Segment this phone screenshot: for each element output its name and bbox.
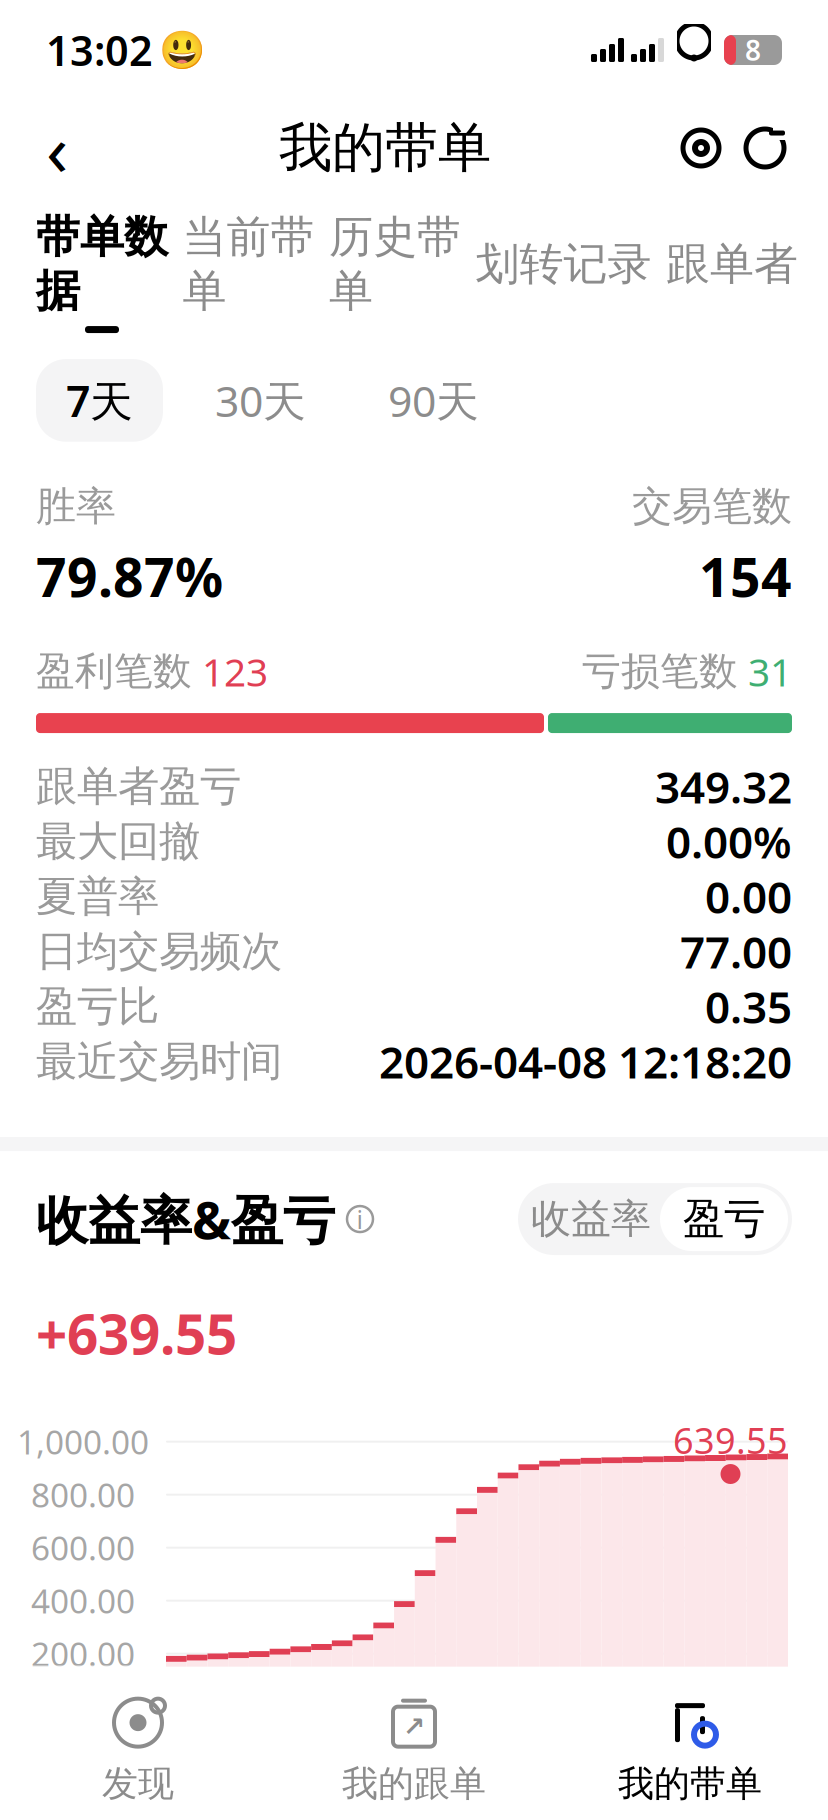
staticText: 我的跟单 bbox=[342, 1762, 486, 1806]
staticText: 历史带单 bbox=[329, 210, 461, 318]
staticText: 😃 bbox=[159, 29, 205, 71]
button[interactable]: Back bbox=[22, 108, 92, 188]
staticText: 最近交易时间 bbox=[36, 1036, 282, 1087]
staticText: 带单数据 bbox=[36, 210, 168, 318]
staticText: 400.00 bbox=[31, 1578, 135, 1623]
button[interactable]: 7天 bbox=[36, 359, 163, 442]
staticText: 我的带单 bbox=[279, 115, 491, 181]
staticText: 交易笔数 bbox=[632, 482, 792, 531]
staticText: 31 bbox=[748, 646, 792, 697]
button[interactable]: 收益率 bbox=[522, 1187, 660, 1251]
button[interactable]: Settings bbox=[678, 125, 724, 171]
button[interactable]: 带单数据 bbox=[36, 210, 168, 333]
button[interactable]: 当前带单 bbox=[182, 210, 314, 333]
staticText: 0.35 bbox=[705, 977, 792, 1036]
staticText: ↗ bbox=[403, 1711, 425, 1742]
staticText: 当前带单 bbox=[182, 210, 314, 318]
staticText: 亏损笔数 bbox=[582, 648, 738, 695]
button[interactable]: 划转记录 bbox=[475, 237, 651, 306]
staticText: 日均交易频次 bbox=[36, 926, 282, 977]
button[interactable]: 历史带单 bbox=[329, 210, 461, 333]
staticText: 800.00 bbox=[31, 1472, 135, 1517]
staticText: 最大回撤 bbox=[36, 816, 200, 867]
staticText: 90天 bbox=[388, 372, 479, 429]
staticText: 77.00 bbox=[680, 922, 792, 981]
staticText: 夏普率 bbox=[36, 871, 159, 922]
staticText: 盈亏 bbox=[683, 1194, 765, 1244]
staticText: 8 bbox=[745, 31, 761, 69]
button[interactable]: 发现 bbox=[0, 1682, 276, 1820]
staticText: 盈利笔数 bbox=[36, 648, 192, 695]
staticText: ‹ bbox=[46, 100, 68, 196]
staticText: 349.32 bbox=[655, 757, 792, 816]
staticText: 跟单者 bbox=[666, 237, 798, 291]
staticText: i bbox=[356, 1202, 363, 1236]
staticText: 7天 bbox=[66, 372, 133, 429]
staticText: 胜率 bbox=[36, 482, 116, 531]
staticText: 盈亏比 bbox=[36, 981, 159, 1032]
staticText: 发现 bbox=[102, 1762, 174, 1806]
staticText: 30天 bbox=[215, 372, 306, 429]
staticText: 0.00% bbox=[666, 812, 792, 871]
button[interactable]: 30天 bbox=[185, 359, 336, 442]
staticText: 600.00 bbox=[31, 1525, 135, 1570]
staticText: 200.00 bbox=[31, 1631, 135, 1676]
staticText: 13:02 bbox=[46, 23, 153, 77]
staticText: 123 bbox=[202, 646, 268, 697]
staticText: +639.55 bbox=[36, 1297, 237, 1370]
staticText: 收益率&盈亏 bbox=[36, 1184, 335, 1254]
staticText: 639.55 bbox=[673, 1416, 788, 1464]
staticText: 我的带单 bbox=[618, 1762, 762, 1806]
staticText: 2026-04-08 12:18:20 bbox=[379, 1032, 792, 1091]
staticText: 1,000.00 bbox=[17, 1419, 149, 1464]
button[interactable]: ↗ bbox=[276, 1682, 552, 1820]
staticText: 划转记录 bbox=[475, 237, 651, 291]
staticText: 0.00 bbox=[705, 867, 792, 926]
staticText: 收益率 bbox=[531, 1194, 651, 1244]
staticText: 跟单者盈亏 bbox=[36, 761, 241, 812]
button[interactable]: 我的带单 bbox=[552, 1682, 828, 1820]
button[interactable]: 盈亏 bbox=[660, 1187, 788, 1251]
button[interactable]: Refresh bbox=[742, 125, 788, 171]
button[interactable]: 跟单者 bbox=[666, 237, 798, 306]
button[interactable]: 90天 bbox=[358, 359, 509, 442]
staticText: 79.87% bbox=[36, 541, 223, 612]
staticText: 154 bbox=[699, 541, 792, 612]
